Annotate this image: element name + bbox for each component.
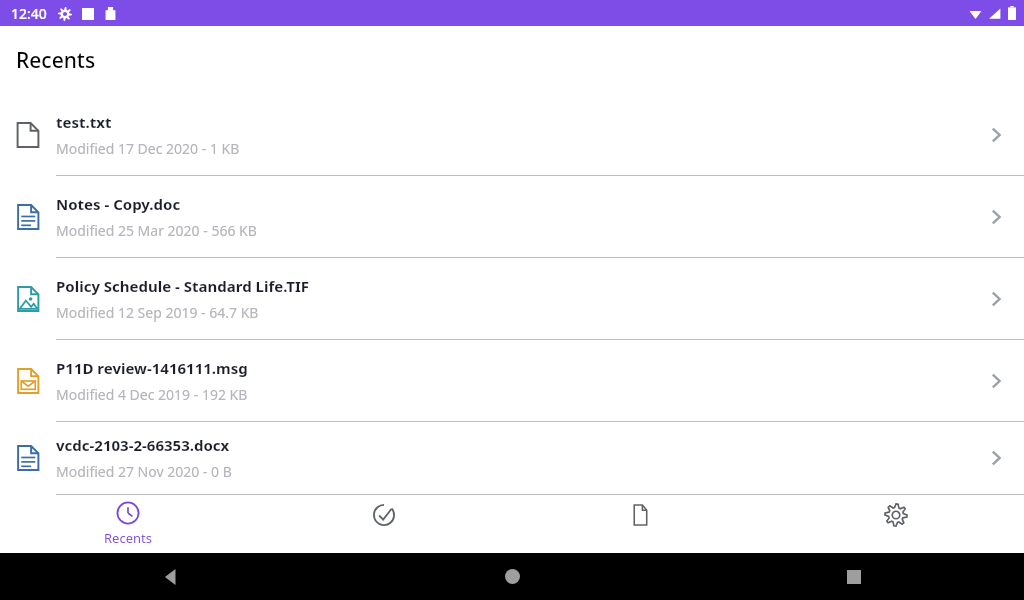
staticText: Modified 12 Sep 2019 - 64.7 KB [56,303,259,322]
button[interactable]: P11D review-1416111.msg [0,340,1024,422]
button[interactable]: Recent apps [683,553,1024,600]
button[interactable]: Recents [0,495,256,553]
staticText: P11D review-1416111.msg [56,358,248,378]
button[interactable]: Files [512,495,768,553]
staticText: Notes - Copy.doc [56,194,181,214]
staticText: Modified 25 Mar 2020 - 566 KB [56,221,257,240]
button[interactable]: Home [342,553,683,600]
button[interactable]: vcdc-2103-2-66353.docx [0,422,1024,495]
button[interactable]: Notes - Copy.doc [0,176,1024,258]
staticText: Recents [16,46,96,75]
staticText: Policy Schedule - Standard Life.TIF [56,276,310,296]
staticText: Modified 27 Nov 2020 - 0 B [56,462,232,481]
staticText: Recents [104,529,152,547]
button[interactable]: Back [0,553,341,600]
button[interactable]: Tasks [256,495,512,553]
button[interactable]: Settings [768,495,1024,553]
staticText: Modified 4 Dec 2019 - 192 KB [56,385,248,404]
staticText: test.txt [56,112,112,132]
staticText: Modified 17 Dec 2020 - 1 KB [56,139,240,158]
staticText: 12:40 [11,4,47,23]
button[interactable]: Policy Schedule - Standard Life.TIF [0,258,1024,340]
button[interactable]: test.txt [0,94,1024,176]
staticText: vcdc-2103-2-66353.docx [56,435,230,455]
